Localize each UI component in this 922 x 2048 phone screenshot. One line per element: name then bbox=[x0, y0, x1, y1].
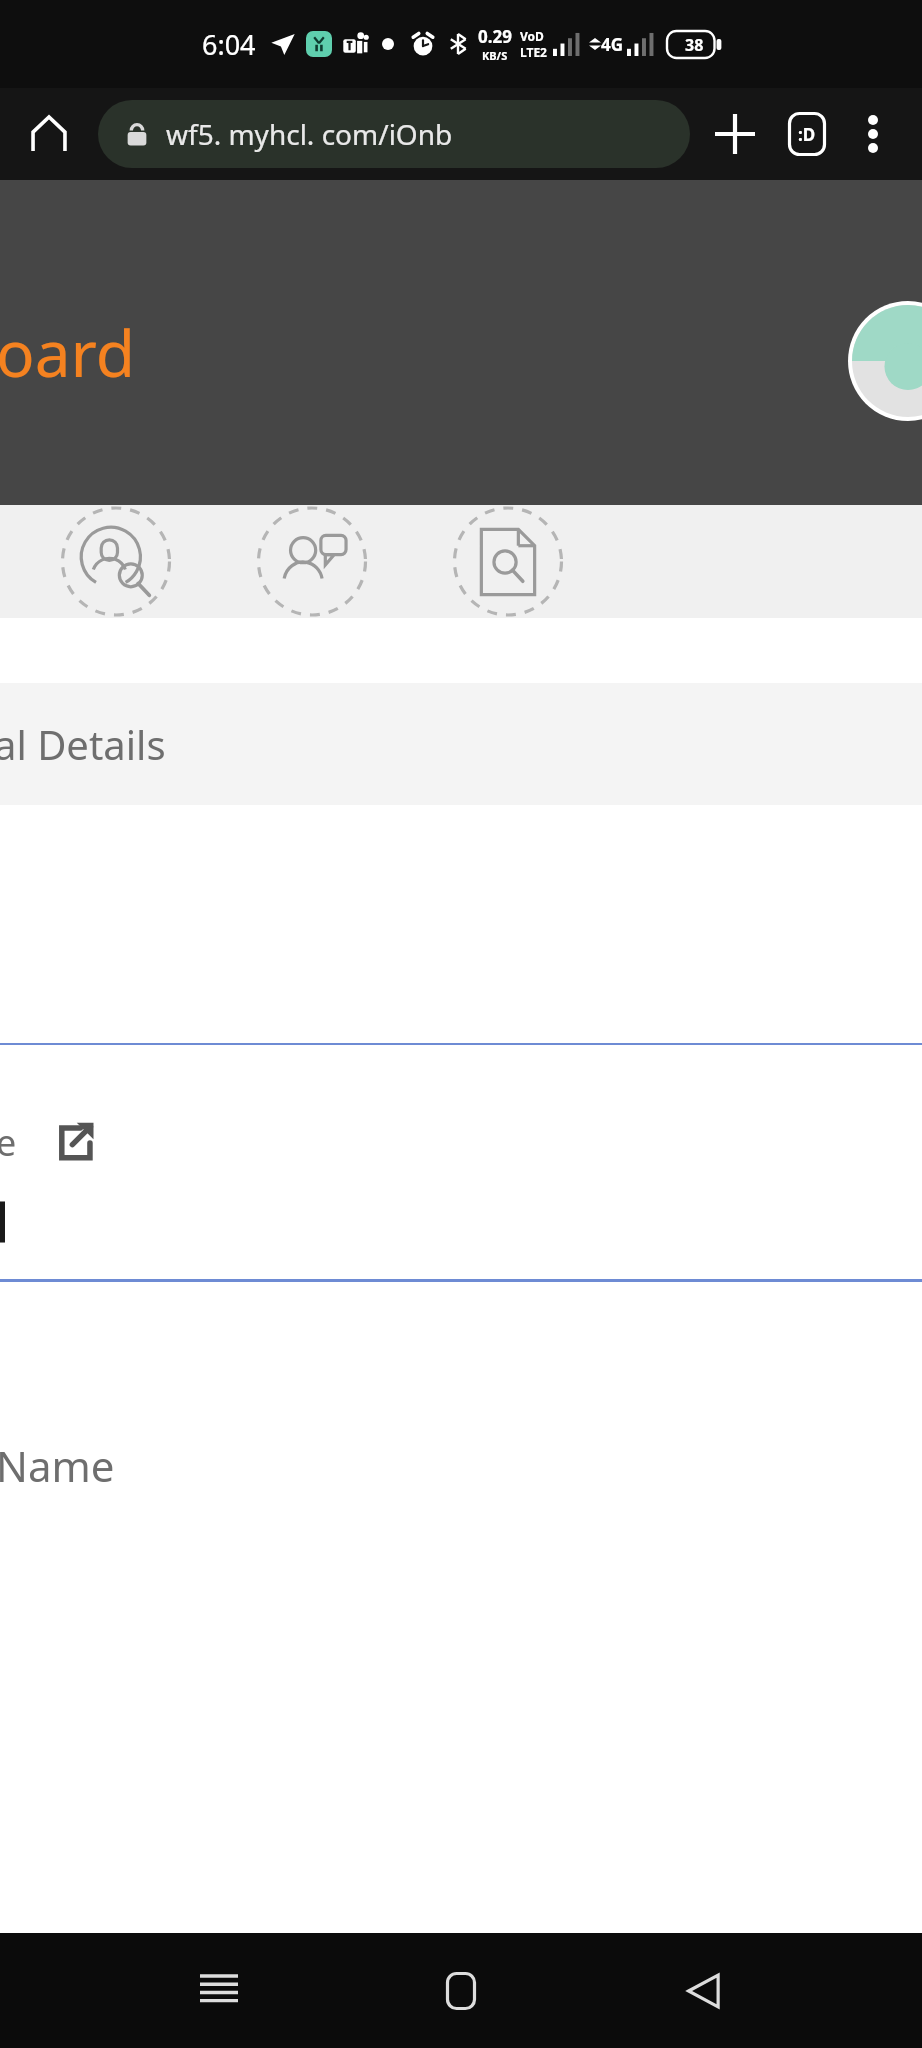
button[interactable]: Feedback bbox=[244, 505, 380, 618]
staticText: 4G bbox=[601, 33, 624, 56]
staticText: 0.29 bbox=[478, 25, 512, 48]
button[interactable]: New tab bbox=[706, 105, 764, 163]
staticText: 38 bbox=[685, 34, 704, 56]
button[interactable]: Recents bbox=[174, 1946, 264, 2036]
button[interactable]: Tabs bbox=[778, 105, 836, 163]
staticText: VoD bbox=[520, 28, 544, 44]
staticText: al Details bbox=[0, 717, 166, 771]
button[interactable]: Profile bbox=[848, 301, 922, 421]
other: Open in new window bbox=[49, 1116, 101, 1168]
staticText: 6:04 bbox=[202, 26, 256, 63]
staticText: wf5. myhcl. com/iOnb bbox=[166, 115, 453, 153]
button[interactable]: wf5. myhcl. com/iOnb bbox=[98, 100, 690, 168]
button[interactable]: al Details bbox=[0, 683, 922, 805]
button[interactable]: e bbox=[0, 1107, 922, 1177]
button[interactable]: Name bbox=[0, 1430, 922, 1500]
button[interactable]: Home bbox=[416, 1946, 506, 2036]
staticText: oard bbox=[0, 309, 136, 396]
staticText: Name bbox=[0, 1437, 115, 1494]
button[interactable]: Home bbox=[22, 107, 76, 161]
button[interactable]: More options bbox=[846, 107, 900, 161]
button[interactable]: Back bbox=[658, 1946, 748, 2036]
button[interactable]: Search employee bbox=[48, 505, 184, 618]
staticText: :D bbox=[798, 123, 816, 146]
staticText: e bbox=[0, 1118, 17, 1167]
staticText: KB/S bbox=[482, 48, 508, 63]
button[interactable]: Document search bbox=[440, 505, 576, 618]
staticText: LTE2 bbox=[520, 44, 547, 60]
